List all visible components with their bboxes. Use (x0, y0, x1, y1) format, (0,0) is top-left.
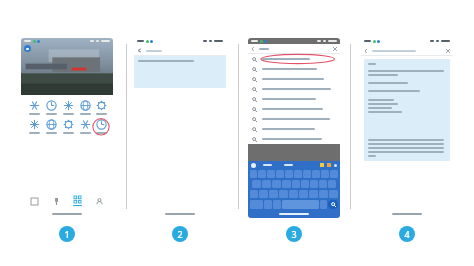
button[interactable] (279, 190, 288, 198)
button[interactable] (272, 180, 281, 188)
button[interactable] (43, 119, 60, 134)
button[interactable] (259, 190, 268, 198)
button[interactable]: 3 (286, 226, 302, 242)
button[interactable] (250, 200, 263, 209)
button[interactable]: 4 (399, 226, 415, 242)
staticText: 4 (404, 228, 410, 240)
staticText: 3 (291, 228, 297, 240)
button[interactable] (60, 100, 77, 115)
button[interactable] (77, 119, 94, 134)
button[interactable] (269, 190, 278, 198)
button[interactable] (328, 180, 336, 188)
button[interactable]: Tab 3 (70, 196, 85, 206)
button[interactable] (60, 119, 77, 134)
button[interactable] (329, 190, 338, 198)
staticText: 2 (177, 228, 183, 240)
other: Back (137, 48, 142, 53)
button[interactable] (252, 84, 336, 94)
button[interactable] (303, 170, 311, 178)
button[interactable] (273, 200, 281, 209)
button[interactable] (289, 190, 298, 198)
button[interactable] (252, 94, 336, 104)
button[interactable] (299, 190, 308, 198)
button[interactable] (252, 64, 336, 74)
button[interactable] (250, 190, 258, 198)
button[interactable] (319, 190, 328, 198)
button[interactable] (262, 180, 271, 188)
button[interactable] (309, 190, 318, 198)
button[interactable] (252, 74, 336, 84)
button[interactable] (94, 119, 108, 136)
button[interactable] (26, 119, 43, 134)
button[interactable] (310, 180, 318, 188)
button[interactable] (294, 170, 302, 178)
button[interactable] (252, 134, 336, 144)
button[interactable] (319, 180, 327, 188)
button[interactable]: 1 (59, 226, 75, 242)
button[interactable]: Back (364, 46, 450, 55)
button[interactable]: Tab 1 (27, 198, 42, 205)
button[interactable] (321, 170, 329, 178)
button[interactable]: Back (137, 46, 223, 55)
button[interactable] (312, 170, 320, 178)
button[interactable] (320, 200, 327, 209)
button[interactable]: Tab 4 (92, 198, 107, 205)
button[interactable] (250, 170, 257, 178)
button[interactable] (77, 100, 94, 115)
button[interactable] (252, 104, 336, 114)
button[interactable] (264, 200, 272, 209)
other: Back (251, 47, 255, 51)
button[interactable] (330, 170, 338, 178)
button[interactable]: Back (24, 45, 31, 52)
button[interactable] (94, 100, 108, 115)
button[interactable] (252, 54, 336, 64)
button[interactable] (276, 170, 284, 178)
button[interactable]: 2 (172, 226, 188, 242)
button[interactable] (368, 63, 446, 157)
button[interactable] (267, 170, 275, 178)
button[interactable] (292, 180, 300, 188)
other: Clear (333, 47, 337, 51)
button[interactable] (43, 100, 60, 115)
other: Back (364, 49, 368, 53)
button[interactable] (252, 114, 336, 124)
other: Clear (446, 49, 450, 53)
button[interactable] (258, 170, 266, 178)
button[interactable] (285, 170, 293, 178)
button[interactable] (252, 124, 336, 134)
button[interactable] (282, 180, 291, 188)
button[interactable] (138, 60, 222, 84)
button[interactable] (26, 100, 43, 115)
staticText: 1 (64, 228, 70, 240)
button[interactable] (301, 180, 309, 188)
button[interactable] (252, 180, 261, 188)
button[interactable]: Back (251, 44, 337, 53)
button[interactable]: Search (328, 200, 338, 209)
button[interactable]: Tab 2 (49, 198, 64, 205)
